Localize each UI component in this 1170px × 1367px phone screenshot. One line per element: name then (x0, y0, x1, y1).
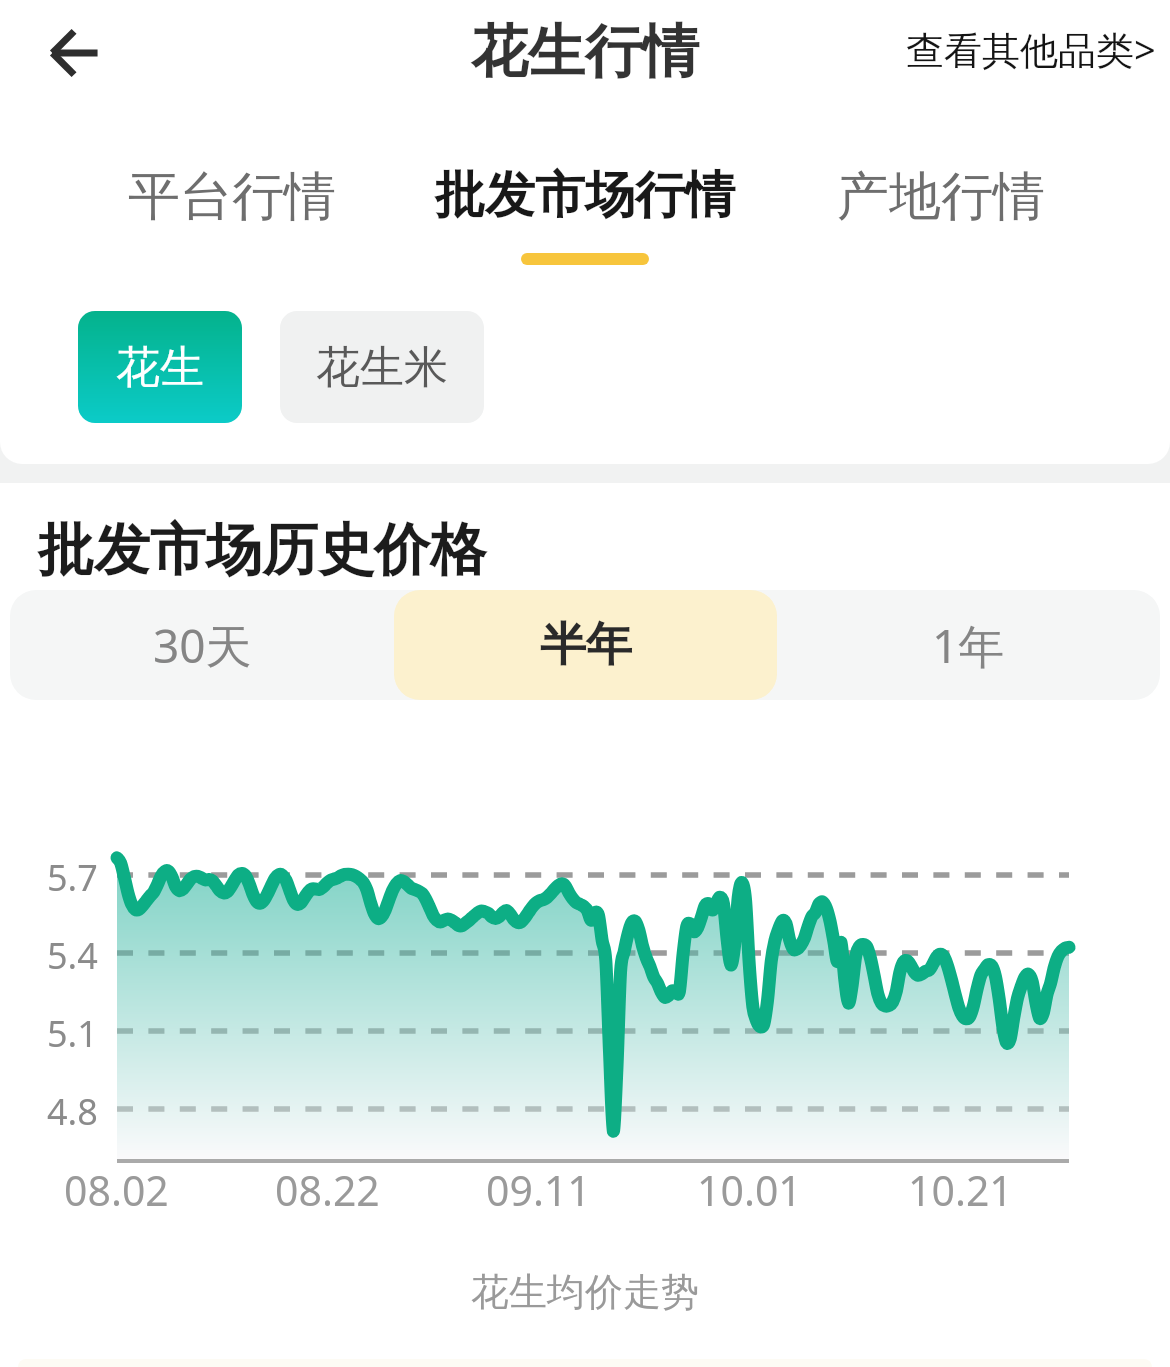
button[interactable]: 30天 (10, 590, 394, 700)
staticText: 1年 (932, 614, 1005, 677)
staticText: 5.4 (47, 931, 98, 980)
staticText: 查看其他品类> (906, 23, 1156, 75)
button[interactable]: 平台行情 (117, 164, 347, 268)
staticText: 08.02 (64, 1162, 169, 1218)
staticText: 批发市场行情 (435, 164, 735, 227)
button[interactable]: 半年 (394, 590, 777, 700)
staticText: 10.21 (908, 1162, 1013, 1218)
button[interactable]: 1年 (777, 590, 1160, 700)
staticText: 批发市场历史价格 (38, 515, 486, 586)
staticText: 产地行情 (837, 164, 1045, 230)
staticText: 花生 (116, 340, 204, 395)
staticText: 花生行情 (471, 16, 699, 88)
staticText: 5.7 (47, 853, 98, 902)
button[interactable]: 花生米 (280, 311, 484, 423)
button[interactable]: 花生 (78, 311, 242, 423)
staticText: 5.1 (47, 1009, 98, 1058)
staticText: 10.01 (697, 1162, 802, 1218)
staticText: 半年 (540, 616, 632, 674)
staticText: 花生均价走势 (0, 1268, 1170, 1316)
staticText: 09.11 (486, 1162, 591, 1218)
staticText: 30天 (153, 614, 252, 677)
button[interactable]: 查看其他品类> (888, 9, 1170, 89)
button[interactable]: 产地行情 (826, 164, 1056, 268)
staticText: 平台行情 (128, 164, 336, 230)
button[interactable]: 批发市场行情 (425, 164, 745, 265)
staticText: 08.22 (275, 1162, 380, 1218)
staticText: 4.8 (47, 1087, 98, 1136)
button[interactable]: Back (33, 11, 117, 95)
staticText: 花生米 (316, 340, 448, 395)
